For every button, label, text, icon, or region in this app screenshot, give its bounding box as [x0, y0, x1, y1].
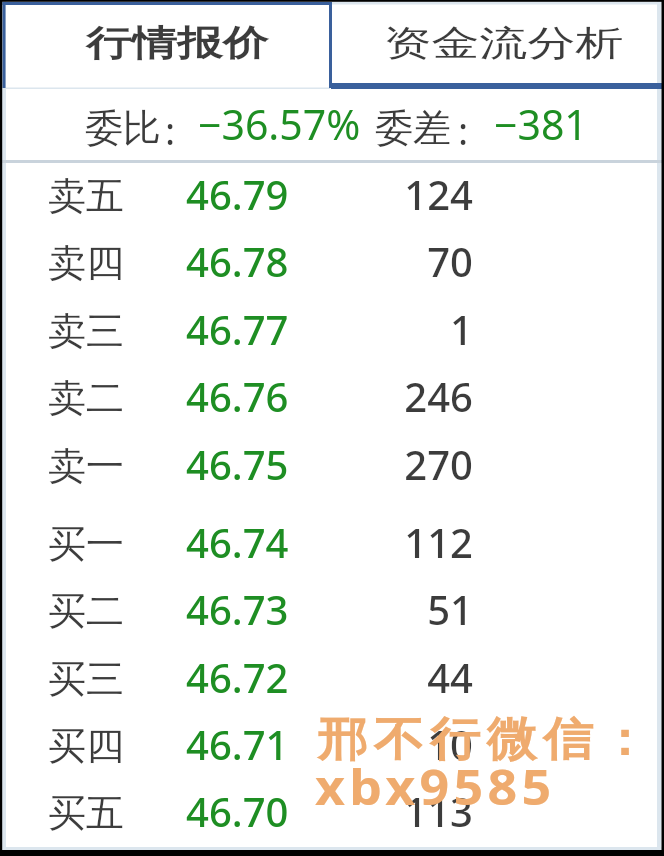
staticText: 卖三 [48, 307, 124, 355]
staticText: 行情报价 [86, 21, 268, 65]
staticText: : [458, 104, 469, 156]
staticText: −381 [494, 96, 588, 152]
staticText: 46.72 [186, 650, 289, 704]
button[interactable]: 买二 [0, 572, 664, 639]
staticText: 10 [330, 717, 473, 771]
button[interactable]: 卖二 [0, 359, 664, 426]
staticText: 46.70 [186, 784, 289, 838]
button[interactable]: 买四 [0, 707, 664, 774]
staticText: 112 [330, 515, 473, 569]
staticText: 买五 [48, 789, 124, 837]
button[interactable]: 资金流分析 tab [331, 0, 664, 89]
button[interactable]: 卖一 [0, 427, 664, 494]
staticText: 270 [330, 437, 473, 491]
button[interactable]: 卖三 [0, 292, 664, 359]
staticText: 46.74 [186, 515, 289, 569]
staticText: 46.75 [186, 437, 289, 491]
staticText: 46.71 [186, 717, 289, 771]
staticText: 卖五 [48, 172, 124, 220]
staticText: 70 [330, 234, 473, 288]
staticText: xbx9585 [315, 754, 556, 819]
staticText: 邢不行微信： [314, 711, 652, 769]
staticText: 46.73 [186, 582, 289, 636]
staticText: 51 [330, 582, 473, 636]
staticText: 买二 [48, 587, 124, 635]
staticText: 113 [330, 784, 473, 838]
staticText: 买三 [48, 655, 124, 703]
staticText: 46.79 [186, 167, 289, 221]
staticText: 买一 [48, 520, 124, 568]
staticText: 46.77 [186, 302, 289, 356]
staticText: 卖二 [48, 374, 124, 422]
staticText: 买四 [48, 722, 124, 770]
staticText: 委比 [85, 104, 161, 152]
staticText: 246 [330, 369, 473, 423]
staticText: 46.76 [186, 369, 289, 423]
button[interactable]: 卖四 [0, 224, 664, 291]
button[interactable]: 买一 [0, 505, 664, 572]
button[interactable]: 买五 [0, 774, 664, 841]
staticText: 46.78 [186, 234, 289, 288]
staticText: 资金流分析 [384, 21, 623, 65]
staticText: 卖四 [48, 239, 124, 287]
button[interactable]: 行情报价 tab, selected [0, 0, 331, 89]
button[interactable]: 买三 [0, 640, 664, 707]
staticText: 委差 [375, 104, 451, 152]
staticText: −36.57% [198, 96, 361, 152]
staticText: : [165, 104, 176, 156]
staticText: 124 [330, 167, 473, 221]
staticText: 44 [330, 650, 473, 704]
staticText: 1 [330, 302, 473, 356]
staticText: 卖一 [48, 442, 124, 490]
button[interactable]: 卖五 [0, 157, 664, 224]
